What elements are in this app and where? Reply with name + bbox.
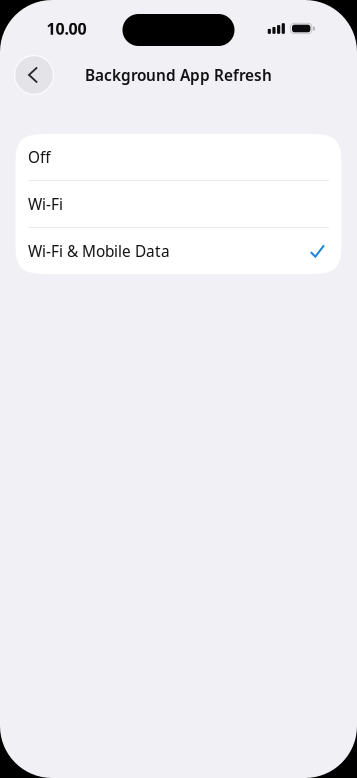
staticText: Off — [28, 147, 51, 167]
staticText: Wi-Fi & Mobile Data — [28, 241, 170, 261]
button[interactable]: Back — [12, 53, 56, 97]
button[interactable]: Off — [15, 134, 341, 180]
button[interactable]: Wi-Fi — [15, 181, 341, 227]
staticText: 10.00 — [46, 18, 86, 39]
staticText: Wi-Fi — [28, 194, 63, 214]
staticText: Background App Refresh — [85, 65, 272, 85]
button[interactable]: Wi-Fi & Mobile Data — [15, 228, 341, 274]
